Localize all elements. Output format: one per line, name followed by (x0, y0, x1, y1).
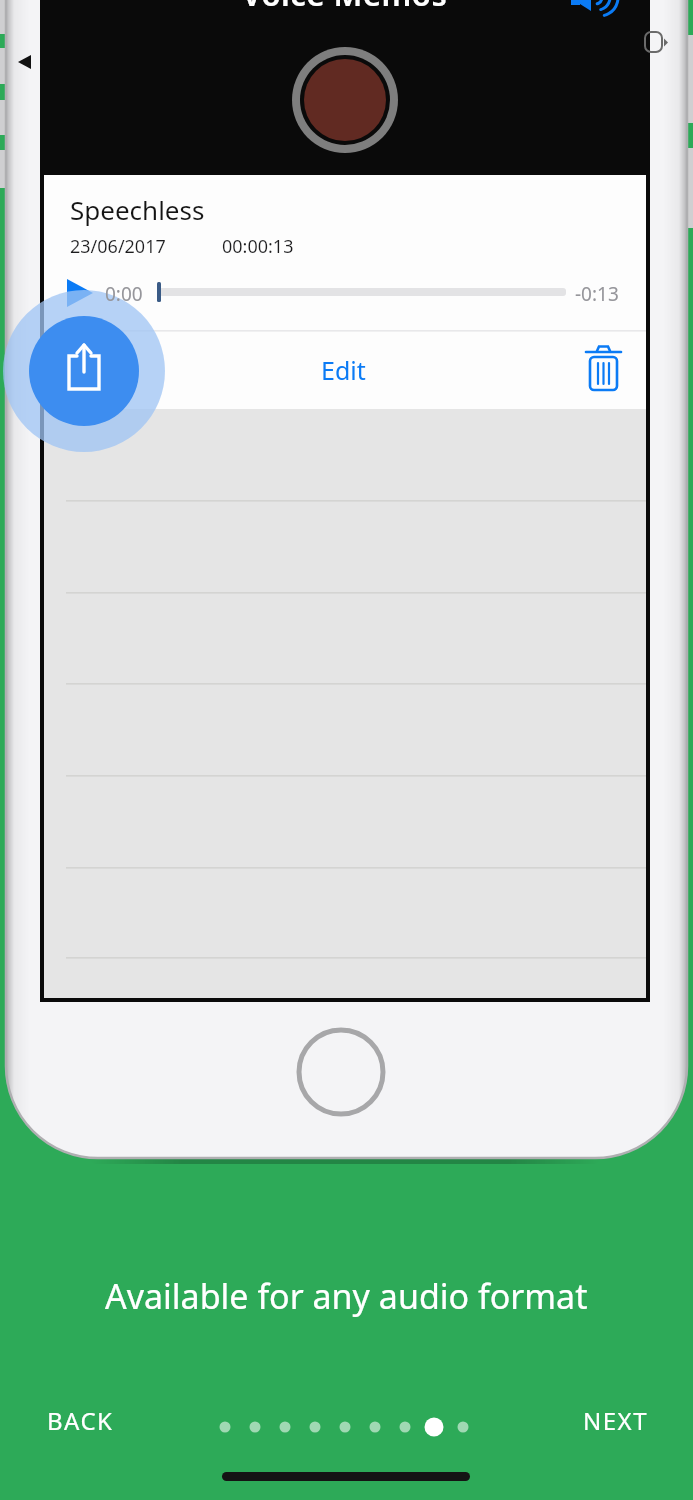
staticText: BACK (47, 1404, 114, 1437)
staticText: Voice Memos (242, 0, 448, 9)
button[interactable]: BACK (25, 1392, 135, 1448)
staticText: Edit (321, 353, 366, 387)
button[interactable] (575, 338, 633, 400)
button[interactable]: NEXT (560, 1392, 670, 1448)
staticText: NEXT (583, 1404, 648, 1437)
button[interactable] (29, 316, 139, 426)
staticText: -0:13 (575, 281, 619, 307)
staticText: 23/06/2017 (70, 234, 166, 259)
staticText: 0:00 (105, 281, 143, 307)
staticText: 00:00:13 (222, 234, 294, 259)
staticText: Available for any audio format (105, 1273, 588, 1319)
button[interactable]: Edit (297, 346, 389, 394)
staticText: Speechless (70, 192, 205, 227)
